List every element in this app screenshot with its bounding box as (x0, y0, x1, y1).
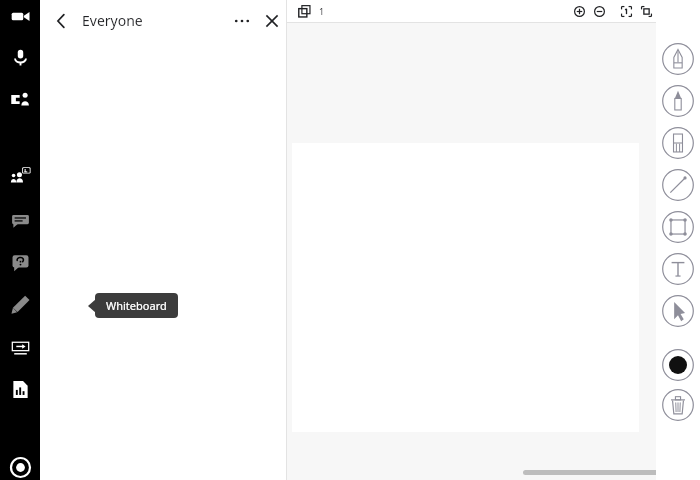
button[interactable]: Help (0, 249, 40, 275)
button[interactable]: Microphone (0, 44, 40, 70)
button[interactable]: Chat (0, 207, 40, 233)
button[interactable]: Line (659, 164, 697, 206)
button[interactable]: Participants (0, 163, 40, 189)
button[interactable]: Camera (0, 3, 40, 29)
button[interactable]: Close (257, 0, 287, 41)
staticText: Whiteboard (106, 298, 167, 313)
button[interactable]: Text (659, 248, 697, 290)
button[interactable]: Eraser (659, 122, 697, 164)
button[interactable]: Zoom out (589, 0, 609, 22)
button[interactable]: Select (659, 290, 697, 332)
button[interactable]: More options (227, 0, 257, 41)
button[interactable]: Record (0, 454, 40, 480)
button[interactable]: Pages (293, 0, 315, 22)
button[interactable]: Present screen (0, 334, 40, 360)
button[interactable]: Back (40, 0, 82, 41)
button[interactable]: Delete (659, 384, 697, 426)
button[interactable]: Shape (659, 206, 697, 248)
button[interactable]: Share content (0, 86, 40, 112)
button[interactable]: Fit to screen (616, 0, 636, 22)
staticText: Everyone (82, 11, 227, 30)
button[interactable]: Colour (659, 346, 697, 384)
button[interactable]: Highlighter (659, 80, 697, 122)
button[interactable]: Fit to width (636, 0, 656, 22)
staticText: 1 (319, 5, 325, 17)
button[interactable]: Pen (659, 38, 697, 80)
button[interactable]: Zoom in (569, 0, 589, 22)
button[interactable]: Whiteboard (0, 291, 40, 317)
button[interactable]: Polls (0, 376, 40, 402)
